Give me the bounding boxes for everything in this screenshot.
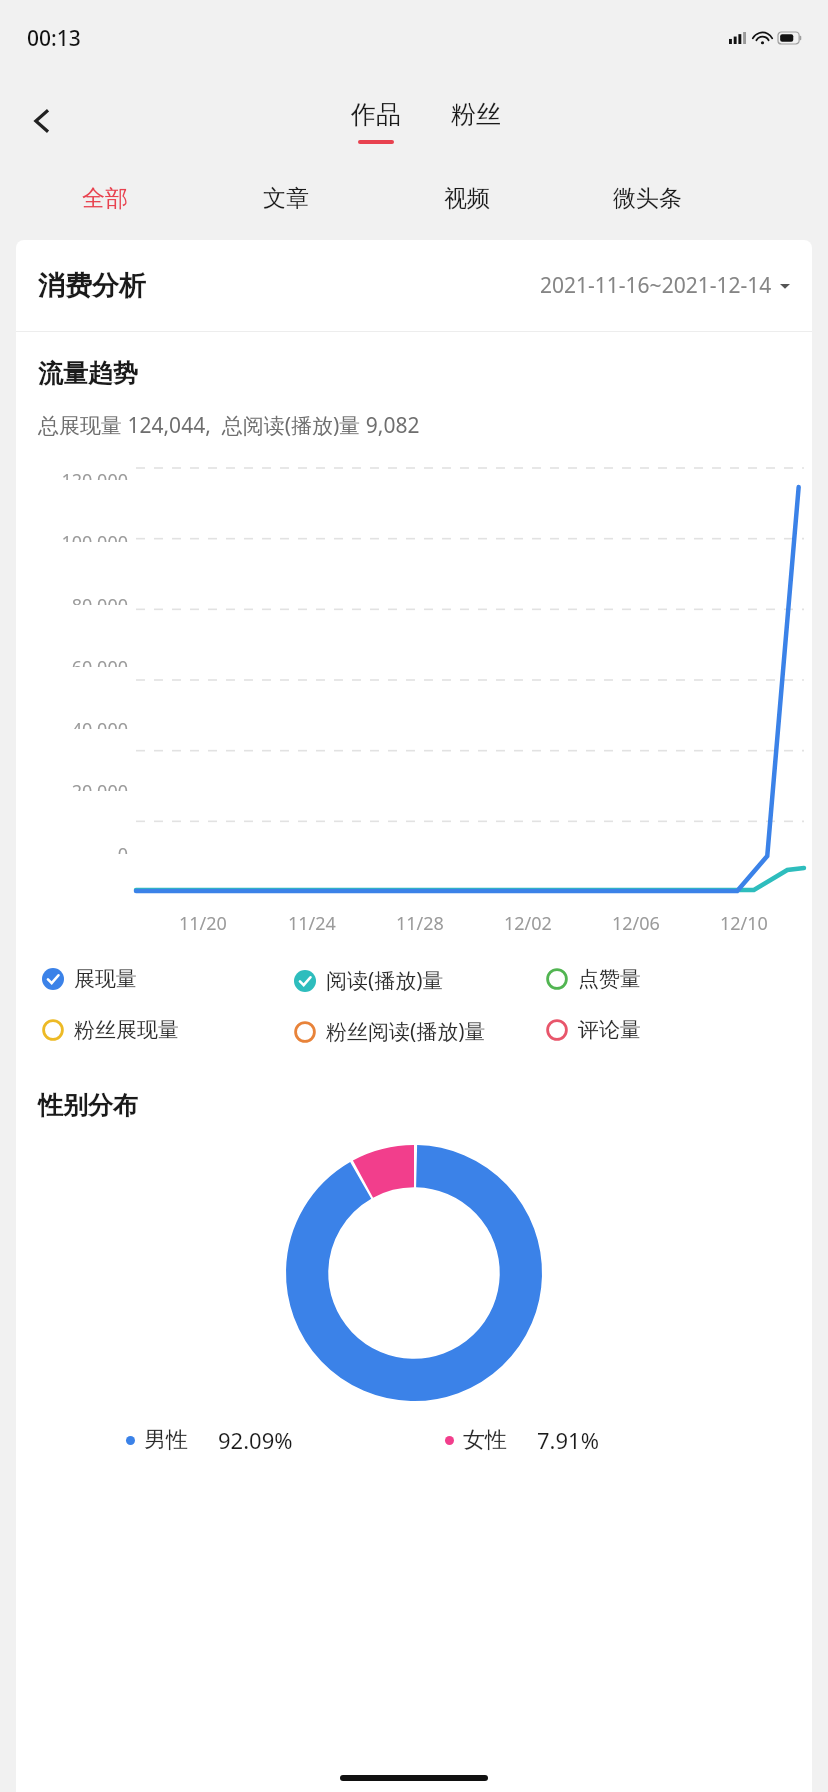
button[interactable]: 文章 (195, 166, 376, 230)
button[interactable]: 男性 (126, 1425, 433, 1455)
staticText: 粉丝展现量 (74, 1017, 179, 1043)
staticText: 性别分布 (38, 1090, 138, 1121)
staticText: 12/06 (612, 911, 660, 936)
button[interactable]: Back (16, 95, 68, 147)
staticText: 2021-11-16~2021-12-14 (540, 271, 772, 300)
button[interactable]: 粉丝阅读(播放)量 (294, 1017, 546, 1046)
button[interactable]: 展现量 (42, 966, 294, 992)
staticText: 作品 (351, 99, 401, 130)
staticText: 视频 (444, 184, 490, 213)
button[interactable]: 点赞量 (546, 966, 798, 992)
staticText: 11/28 (396, 911, 444, 936)
button[interactable]: 粉丝展现量 (42, 1017, 294, 1043)
button[interactable]: 全部 (14, 166, 195, 230)
staticText: 0 (117, 842, 128, 854)
staticText: 60,000 (71, 655, 128, 667)
button[interactable]: 作品 (337, 93, 415, 150)
button[interactable]: 视频 (376, 166, 557, 230)
staticText: 粉丝阅读(播放)量 (326, 1017, 486, 1046)
staticText: 100,000 (61, 530, 128, 542)
staticText: 文章 (263, 184, 309, 213)
staticText: 120,000 (61, 468, 128, 480)
staticText: 评论量 (578, 1017, 641, 1043)
staticText: 阅读(播放)量 (326, 966, 444, 995)
staticText: 7.91% (537, 1425, 599, 1455)
staticText: 点赞量 (578, 966, 641, 992)
staticText: 男性 (144, 1426, 188, 1454)
button[interactable]: 消费分析 (16, 240, 812, 331)
staticText: 女性 (463, 1426, 507, 1454)
staticText: 总展现量 124,044, 总阅读(播放)量 9,082 (38, 411, 420, 440)
button[interactable]: 粉丝 (437, 100, 515, 143)
button[interactable]: 阅读(播放)量 (294, 966, 546, 995)
staticText: 20,000 (71, 779, 128, 791)
button[interactable]: 微头条 (557, 166, 738, 230)
staticText: 微头条 (613, 184, 682, 213)
staticText: 流量趋势 (38, 358, 138, 389)
button[interactable]: 女性 (445, 1425, 752, 1455)
staticText: 11/20 (179, 911, 227, 936)
staticText: 12/02 (504, 911, 552, 936)
staticText: 展现量 (74, 966, 137, 992)
staticText: 粉丝 (451, 99, 501, 130)
staticText: 消费分析 (38, 269, 146, 303)
staticText: 40,000 (71, 717, 128, 729)
staticText: 92.09% (218, 1425, 293, 1455)
staticText: 12/10 (720, 911, 768, 936)
button[interactable]: 评论量 (546, 1017, 798, 1043)
staticText: 00:13 (27, 24, 81, 53)
staticText: 11/24 (288, 911, 336, 936)
staticText: 全部 (82, 184, 128, 213)
staticText: 80,000 (71, 593, 128, 605)
